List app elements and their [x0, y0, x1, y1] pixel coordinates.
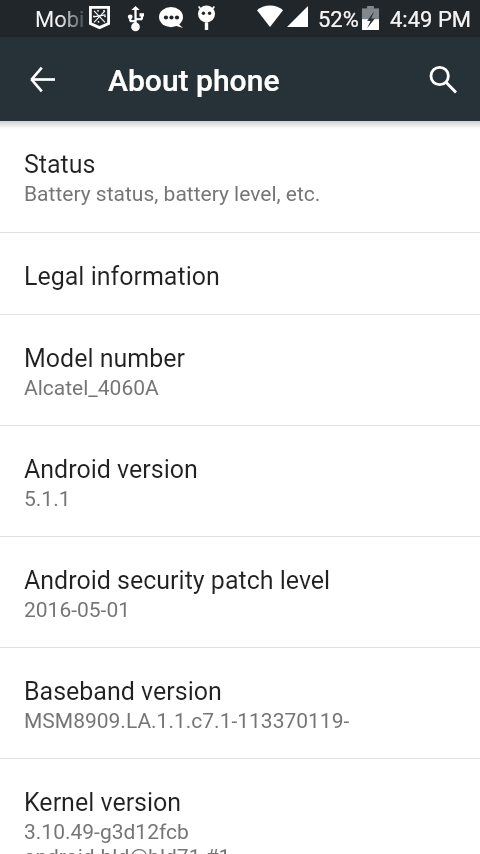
button[interactable]: Search — [418, 55, 466, 103]
staticText: MSM8909.LA.1.1.c7.1-113370119- — [24, 709, 350, 734]
button[interactable]: Model number — [0, 315, 480, 425]
staticText: android-bld@bld71 #1 — [24, 845, 231, 854]
staticText: 2016-05-01 — [24, 598, 131, 623]
staticText: Mobi — [35, 7, 85, 33]
staticText: Model number — [24, 344, 185, 373]
button[interactable]: Status — [0, 121, 480, 232]
staticText: Android version — [24, 455, 198, 484]
staticText: 4:49 PM — [390, 7, 471, 33]
staticText: 52% — [318, 7, 359, 33]
button[interactable]: Baseband version — [0, 648, 480, 758]
button[interactable]: Kernel version — [0, 759, 480, 854]
staticText: Battery status, battery level, etc. — [24, 182, 321, 207]
button[interactable]: Android version — [0, 426, 480, 536]
button[interactable]: Legal information — [0, 233, 480, 314]
staticText: Legal information — [24, 262, 220, 291]
staticText: Alcatel_4060A — [24, 376, 159, 401]
staticText: Baseband version — [24, 677, 222, 706]
staticText: Kernel version — [24, 788, 182, 817]
button[interactable]: Navigate up — [18, 55, 66, 103]
staticText: 3.10.49-g3d12fcb — [24, 820, 189, 845]
staticText: Android security patch level — [24, 566, 331, 595]
button[interactable]: Android security patch level — [0, 537, 480, 647]
staticText: Status — [24, 150, 96, 179]
staticText: 5.1.1 — [24, 487, 71, 512]
staticText: About phone — [108, 63, 280, 98]
